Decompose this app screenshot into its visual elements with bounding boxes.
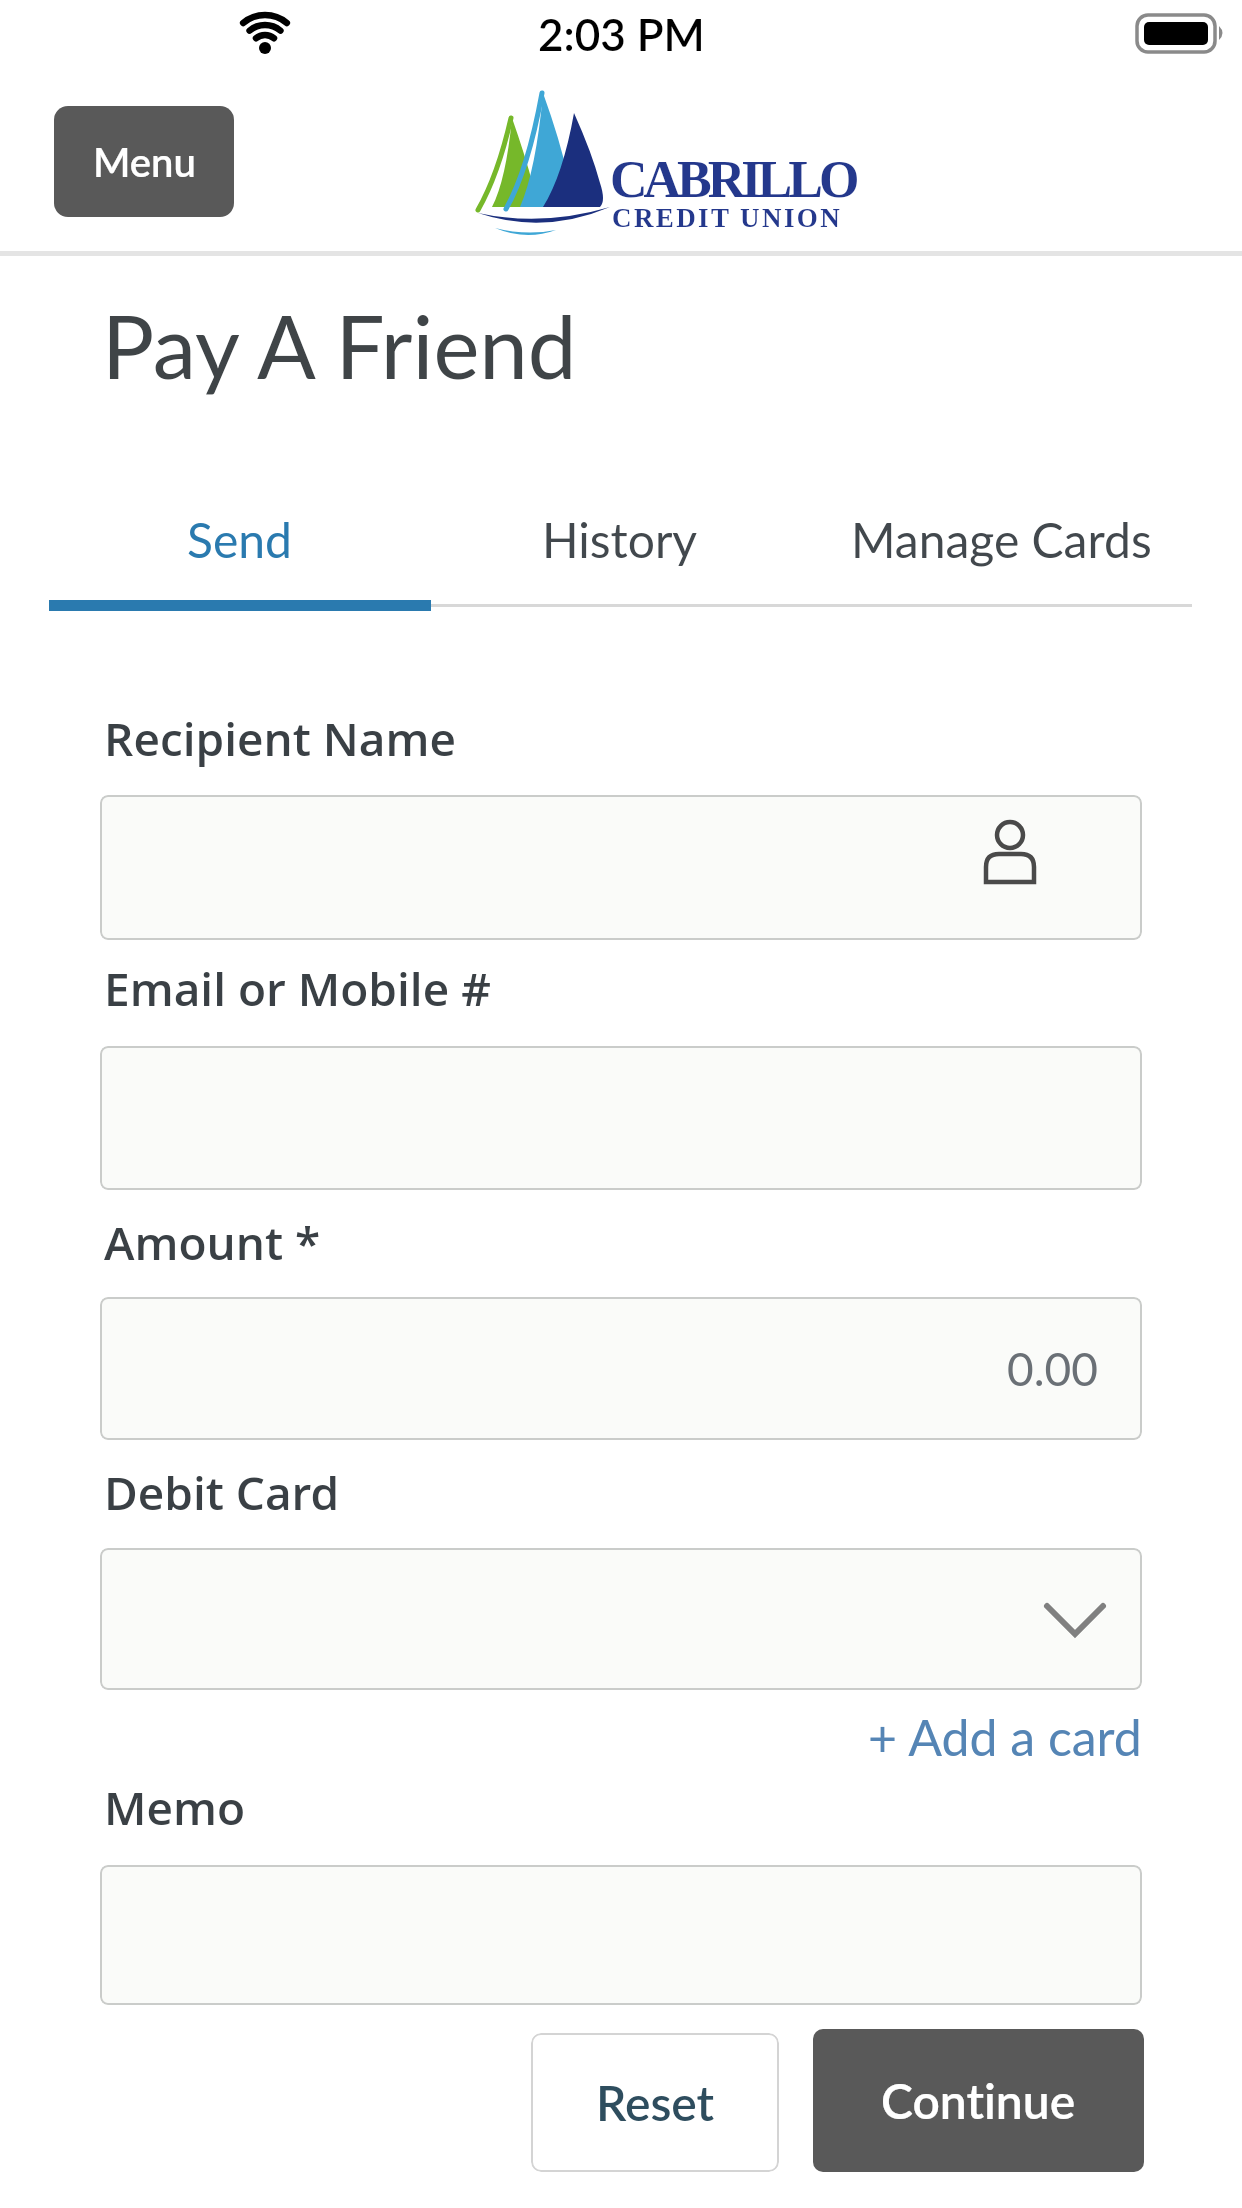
- staticText: Manage Cards: [851, 511, 1152, 569]
- staticText: Amount *: [104, 1211, 321, 1274]
- button[interactable]: Reset: [531, 2033, 779, 2172]
- button[interactable]: [100, 1046, 1142, 1190]
- staticText: History: [542, 511, 698, 569]
- staticText: Reset: [596, 2074, 715, 2132]
- staticText: Menu: [93, 138, 196, 186]
- button[interactable]: History: [429, 500, 810, 580]
- button[interactable]: [100, 1548, 1142, 1690]
- button[interactable]: [100, 1865, 1142, 2005]
- staticText: Continue: [881, 2072, 1076, 2130]
- staticText: Pay A Friend: [102, 293, 577, 397]
- staticText: CREDIT UNION: [612, 203, 843, 233]
- button[interactable]: 0.00: [100, 1297, 1142, 1440]
- staticText: CABRILLO: [610, 151, 856, 209]
- staticText: Recipient Name: [104, 707, 456, 770]
- staticText: Send: [187, 511, 292, 569]
- staticText: 2:03 PM: [538, 8, 705, 58]
- staticText: + Add a card: [868, 1707, 1142, 1767]
- button[interactable]: Menu: [54, 106, 234, 217]
- button[interactable]: Continue: [813, 2029, 1144, 2172]
- staticText: 0.00: [1007, 1341, 1098, 1396]
- staticText: Memo: [104, 1776, 246, 1839]
- button[interactable]: Send: [49, 500, 429, 580]
- button[interactable]: [100, 795, 1142, 940]
- staticText: Debit Card: [104, 1461, 340, 1524]
- button[interactable]: Manage Cards: [810, 500, 1192, 580]
- staticText: Email or Mobile #: [104, 957, 491, 1020]
- button[interactable]: + Add a card: [860, 1706, 1142, 1768]
